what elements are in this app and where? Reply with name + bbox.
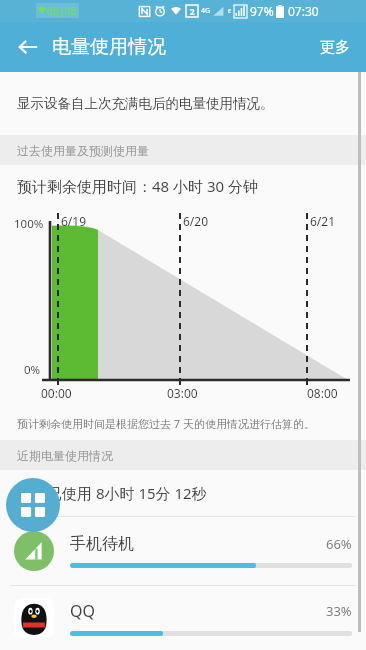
staticText: 2: [190, 6, 195, 17]
button[interactable]: 更多: [312, 28, 358, 67]
staticText: 0B|0B: [47, 4, 77, 18]
staticText: 电量使用情况: [52, 35, 166, 59]
staticText: 近期电量使用情况: [17, 448, 113, 463]
button[interactable]: 手机待机: [0, 517, 366, 585]
staticText: 手机待机: [70, 534, 134, 554]
staticText: 电池已使用 8小时 15分 12秒: [17, 483, 207, 503]
staticText: 33%: [326, 602, 352, 620]
staticText: 预计剩余使用时间：48 小时 30 分钟: [17, 176, 259, 196]
staticText: 更多: [320, 38, 350, 57]
staticText: QQ: [70, 600, 95, 622]
staticText: 显示设备自上次充满电后的电量使用情况。: [17, 95, 274, 112]
staticText: 0%: [24, 362, 41, 378]
staticText: 07:30: [288, 3, 319, 19]
staticText: 6/20: [183, 213, 209, 229]
staticText: 过去使用量及预测使用量: [17, 143, 149, 158]
staticText: E: [228, 7, 232, 15]
staticText: 97%: [250, 3, 274, 19]
staticText: 4G: [201, 6, 211, 16]
staticText: 预计剩余使用时间是根据您过去 7 天的使用情况进行估算的。: [17, 416, 316, 431]
staticText: 6/21: [310, 213, 336, 229]
staticText: 03:00: [167, 385, 198, 401]
staticText: 08:00: [307, 385, 338, 401]
button[interactable]: Apps: [6, 478, 60, 532]
staticText: 100%: [14, 216, 44, 232]
button[interactable]: QQ: [0, 586, 366, 650]
button[interactable]: Back: [6, 22, 50, 72]
staticText: 66%: [326, 535, 352, 553]
staticText: 00:00: [41, 385, 72, 401]
staticText: 6/19: [61, 213, 87, 229]
